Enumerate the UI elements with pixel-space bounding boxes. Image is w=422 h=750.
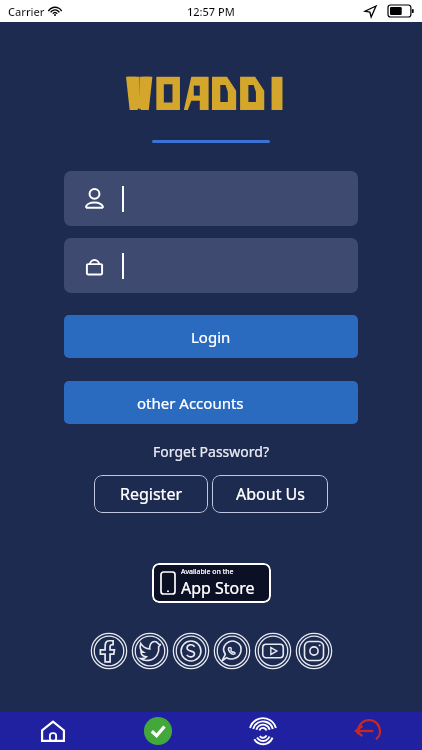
button[interactable]: Username	[64, 171, 358, 226]
button[interactable]: Twitter	[129, 630, 170, 671]
button[interactable]: Password	[64, 238, 358, 293]
button[interactable]: Fingerprint	[210, 712, 316, 750]
staticText: About Us	[236, 483, 305, 505]
button[interactable]: Confirm	[105, 712, 210, 750]
button[interactable]: Available on the App Store	[152, 563, 271, 603]
staticText: Available on the	[181, 567, 234, 577]
button[interactable]: Instagram	[293, 630, 334, 671]
staticText: Login	[191, 327, 231, 347]
staticText: 12:57 PM	[187, 4, 235, 19]
button[interactable]: Facebook	[88, 630, 129, 671]
staticText: Carrier	[8, 4, 45, 19]
staticText: other Accounts	[137, 393, 244, 413]
button[interactable]: Forget Password?	[153, 442, 269, 461]
staticText: Register	[120, 483, 183, 505]
button[interactable]: WhatsApp	[211, 630, 252, 671]
staticText: App Store	[181, 577, 255, 599]
button[interactable]: Skype	[170, 630, 211, 671]
button[interactable]: About Us	[212, 475, 328, 513]
button[interactable]: Register	[94, 475, 208, 513]
button[interactable]: Logout	[316, 712, 422, 750]
button[interactable]: Home	[0, 712, 105, 750]
button[interactable]: YouTube	[252, 630, 293, 671]
button[interactable]: Login	[64, 315, 358, 358]
button[interactable]: other Accounts	[64, 381, 358, 424]
